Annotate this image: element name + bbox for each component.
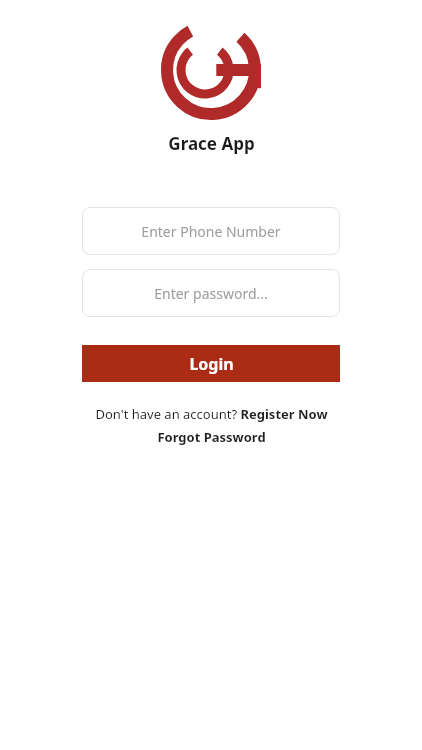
- staticText: Forgot Password: [157, 428, 266, 446]
- button[interactable]: Don't have an account? Register Now: [91, 404, 332, 424]
- staticText: Enter Phone Number: [141, 222, 281, 241]
- button[interactable]: Forgot Password: [153, 427, 270, 447]
- other: Grace App logo: [159, 18, 263, 122]
- staticText: Login: [189, 353, 234, 375]
- staticText: Don't have an account? Register Now: [95, 405, 328, 423]
- staticText: Grace App: [168, 132, 255, 155]
- button[interactable]: Enter Phone Number: [82, 207, 340, 255]
- button[interactable]: Enter password...: [82, 269, 340, 317]
- button[interactable]: Login: [82, 345, 340, 382]
- staticText: Enter password...: [154, 284, 268, 303]
